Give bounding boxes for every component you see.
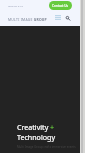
button[interactable]: Menu bbox=[53, 13, 63, 23]
staticText: MULTI IMAGE GROUP bbox=[8, 17, 47, 22]
button[interactable]: Contact Us bbox=[49, 1, 72, 10]
staticText: Technology bbox=[17, 132, 56, 142]
staticText: Creativity + bbox=[17, 122, 55, 132]
staticText: Multi Image Group crafts immersive event… bbox=[17, 145, 76, 149]
button[interactable]: Search bbox=[63, 13, 73, 23]
staticText: Contact Us bbox=[52, 4, 69, 8]
staticText: Mon-Fri 9-18 bbox=[8, 4, 23, 7]
